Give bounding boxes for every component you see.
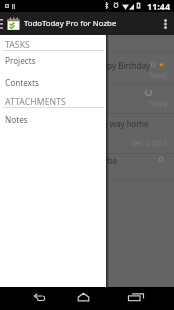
staticText: TASKS <box>5 39 30 51</box>
button[interactable]: Recent apps <box>122 285 150 308</box>
staticText: ATTACHMENTS <box>5 96 66 108</box>
button[interactable]: Maybe <box>92 155 118 166</box>
staticText: Notes <box>5 114 28 125</box>
button[interactable]: On the way home <box>82 118 149 129</box>
staticText: Today <box>0 71 167 80</box>
button[interactable]: Back <box>25 285 53 308</box>
button[interactable]: More options <box>157 12 174 35</box>
button[interactable]: Open navigation drawer <box>0 12 5 35</box>
button[interactable]: Projects <box>0 51 106 69</box>
staticText: Today <box>0 99 167 108</box>
staticText: Dec 4, 2013 <box>0 139 167 148</box>
button[interactable]: Happy Birthday <box>92 60 151 71</box>
staticText: TodoToday Pro for Nozbe <box>24 18 157 29</box>
button[interactable]: Contexts <box>0 73 106 91</box>
button[interactable]: Notes <box>0 110 106 128</box>
button[interactable]: Home <box>69 285 97 308</box>
staticText: Contexts <box>5 77 39 88</box>
staticText: Projects <box>5 55 36 66</box>
staticText: 11:44 <box>147 0 171 12</box>
